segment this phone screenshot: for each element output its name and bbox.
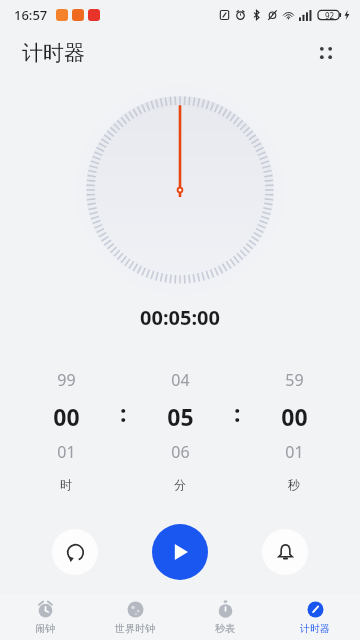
staticText: 05 xyxy=(167,401,194,432)
staticText: 59 xyxy=(285,369,304,391)
staticText: 16:57 xyxy=(14,6,48,24)
staticText: : xyxy=(234,397,241,428)
staticText: 计时器 xyxy=(22,40,85,66)
staticText: 04 xyxy=(171,369,190,391)
staticText: 闹钟 xyxy=(35,622,55,635)
button[interactable]: More options xyxy=(308,35,344,71)
staticText: 世界时钟 xyxy=(115,622,155,635)
staticText: 92 xyxy=(325,10,335,21)
button[interactable]: 秒表 xyxy=(180,594,270,640)
staticText: 00 xyxy=(53,401,80,432)
button[interactable]: 闹钟 xyxy=(0,594,90,640)
button[interactable]: 世界时钟 xyxy=(90,594,180,640)
button[interactable]: Ringtone xyxy=(262,529,308,575)
staticText: 秒表 xyxy=(215,622,235,635)
staticText: 99 xyxy=(57,369,76,391)
staticText: 01 xyxy=(285,441,304,463)
staticText: 06 xyxy=(171,441,190,463)
staticText: 时 xyxy=(60,477,72,492)
button[interactable]: Reset xyxy=(52,529,98,575)
staticText: 秒 xyxy=(288,477,300,492)
staticText: 计时器 xyxy=(300,622,330,635)
staticText: 00 xyxy=(281,401,308,432)
staticText: 分 xyxy=(174,477,186,492)
button[interactable]: 分 xyxy=(134,369,226,492)
staticText: 00:05:00 xyxy=(140,304,220,331)
staticText: : xyxy=(120,397,127,428)
button[interactable]: 计时器 xyxy=(270,594,360,640)
staticText: 01 xyxy=(57,441,76,463)
button[interactable]: Start xyxy=(152,524,208,580)
button[interactable]: 秒 xyxy=(248,369,340,492)
button[interactable]: 时 xyxy=(20,369,112,492)
